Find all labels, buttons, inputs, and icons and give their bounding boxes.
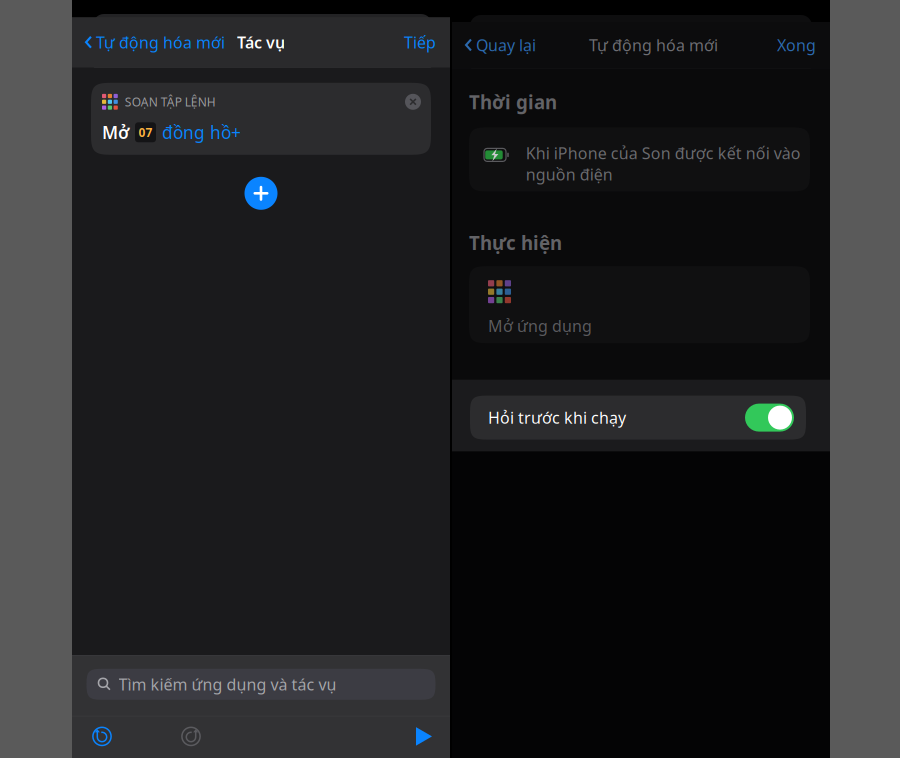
button[interactable]: Quay lại (452, 22, 544, 68)
staticText: Quay lại (476, 34, 536, 56)
staticText: Thực hiện (469, 230, 562, 255)
staticText: Hỏi trước khi chạy (488, 407, 626, 428)
button[interactable]: Mở ứng dụng (469, 266, 810, 343)
button[interactable]: SOẠN TẬP LỆNH (91, 83, 431, 155)
staticText: Tự động hóa mới (589, 34, 718, 56)
button[interactable]: Khi iPhone của Son được kết nối vào nguồ… (469, 127, 810, 191)
staticText: Mở (102, 121, 129, 144)
staticText: Tiếp (404, 32, 436, 53)
staticText: đồng hồ+ (162, 121, 241, 144)
button[interactable]: Xong (763, 22, 830, 68)
button[interactable]: Thêm tác vụ (244, 177, 277, 210)
staticText: Mở ứng dụng (488, 315, 592, 336)
staticText: SOẠN TẬP LỆNH (125, 94, 216, 110)
staticText: Khi iPhone của Son được kết nối vào nguồ… (526, 142, 801, 185)
button[interactable]: Làm lại (181, 726, 201, 746)
staticText: Tác vụ (237, 32, 285, 53)
staticText: Tìm kiếm ứng dụng và tác vụ (118, 674, 336, 695)
staticText: Tự động hóa mới (96, 32, 225, 53)
button[interactable]: Tiếp (390, 17, 450, 67)
staticText: Xong (777, 34, 816, 56)
staticText: Thời gian (469, 90, 557, 114)
button[interactable]: Chạy (415, 727, 432, 746)
button[interactable]: Hoàn tác (92, 726, 112, 746)
button[interactable]: Tự động hóa mới (72, 17, 233, 67)
staticText: 07 (138, 124, 152, 140)
button[interactable]: Hỏi trước khi chạy (470, 396, 806, 440)
